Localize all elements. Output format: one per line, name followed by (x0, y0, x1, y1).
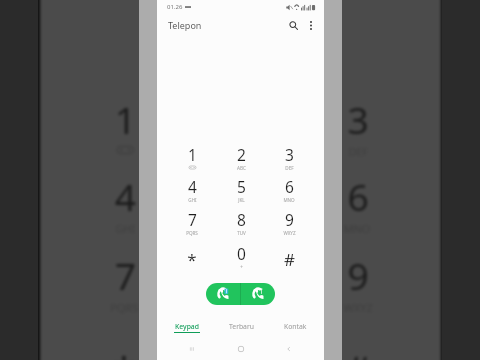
button[interactable]: Back (275, 338, 303, 360)
button[interactable]: 7 (69, 250, 179, 324)
button[interactable]: 0 (186, 331, 297, 360)
button[interactable]: 4 (169, 176, 215, 207)
staticText: JKL (234, 221, 251, 235)
button[interactable]: 9 (302, 250, 412, 324)
staticText: PQRS (186, 230, 198, 236)
staticText: 01.26 (167, 3, 183, 11)
staticText: 4 (188, 176, 197, 197)
staticText: 6 (285, 176, 294, 197)
staticText: MNO (283, 197, 295, 203)
button[interactable]: # (266, 248, 312, 279)
staticText: JKL (238, 197, 245, 203)
button[interactable]: Kontak (268, 322, 322, 342)
staticText: 2 (237, 144, 246, 165)
staticText: # (345, 343, 371, 360)
button[interactable]: 5 (186, 170, 297, 245)
button[interactable]: 8 (186, 250, 297, 324)
button[interactable]: 6 (266, 176, 312, 207)
button[interactable]: 8 (218, 209, 264, 240)
button[interactable]: Call with SIM 2 (241, 283, 275, 305)
staticText: Telepon (168, 19, 202, 31)
staticText: ABC (237, 165, 246, 171)
button[interactable]: # (302, 343, 412, 360)
staticText: 7 (188, 209, 197, 230)
button[interactable]: * (69, 343, 179, 360)
staticText: GHI (188, 197, 197, 203)
button[interactable]: 3 (302, 94, 412, 168)
button[interactable]: 9 (266, 209, 312, 240)
staticText: 7 (114, 250, 136, 300)
button[interactable]: 0 (218, 243, 264, 274)
staticText: 6 (347, 170, 369, 221)
button[interactable]: 5 (218, 176, 264, 207)
button[interactable]: 6 (302, 170, 412, 245)
button[interactable]: Search (284, 16, 302, 34)
staticText: 8 (237, 209, 246, 230)
staticText: 0 (237, 243, 246, 264)
button[interactable]: Terbaru (214, 322, 268, 342)
staticText: 9 (347, 250, 369, 300)
staticText: Kontak (284, 322, 307, 331)
staticText: * (112, 343, 136, 360)
staticText: 3 (285, 144, 294, 165)
button[interactable]: 3 (266, 144, 312, 175)
staticText: # (284, 248, 295, 271)
staticText: WXYZ (283, 230, 296, 236)
staticText: Keypad (175, 322, 199, 331)
button[interactable]: Keypad (159, 322, 214, 342)
staticText: TUV (232, 300, 254, 314)
button[interactable]: Recents (178, 338, 206, 360)
button[interactable]: * (169, 248, 215, 279)
staticText: ABC (232, 144, 254, 158)
staticText: + (240, 264, 243, 270)
staticText: 5 (232, 170, 254, 221)
button[interactable]: Call with SIM 1 (206, 283, 240, 305)
staticText: 0 (232, 331, 254, 360)
staticText: 8 (232, 250, 254, 300)
button[interactable]: 7 (169, 209, 215, 240)
button[interactable]: More options (302, 16, 320, 34)
staticText: 4 (114, 170, 136, 221)
staticText: 9 (285, 209, 294, 230)
button[interactable]: 1 (169, 144, 215, 175)
button[interactable]: 2 (186, 94, 297, 168)
staticText: Terbaru (229, 322, 254, 331)
button[interactable]: 2 (218, 144, 264, 175)
staticText: TUV (237, 230, 246, 236)
staticText: 1 (114, 94, 136, 144)
button[interactable]: 1 (69, 94, 179, 168)
button[interactable]: 4 (69, 170, 179, 245)
staticText: 1 (188, 144, 197, 165)
staticText: * (187, 248, 197, 271)
button[interactable]: Home (227, 338, 255, 360)
staticText: 3 (347, 94, 369, 144)
staticText: DEF (285, 165, 294, 171)
staticText: 5 (237, 176, 246, 197)
